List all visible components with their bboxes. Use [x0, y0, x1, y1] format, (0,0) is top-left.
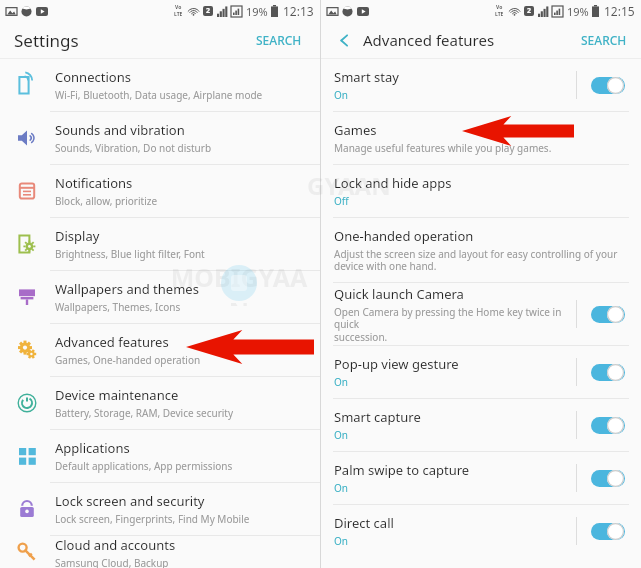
staticText: Device maintenance	[55, 386, 179, 404]
button[interactable]: Toggle Pop-up view gesture	[591, 364, 625, 381]
staticText: LTE	[495, 11, 504, 18]
staticText: Notifications	[55, 174, 133, 192]
staticText: Brightness, Blue light filter, Font	[55, 247, 205, 261]
button[interactable]: Toggle Palm swipe to capture	[591, 470, 625, 487]
button[interactable]: Pop-up view gesture	[321, 346, 641, 398]
staticText: Samsung Cloud, Backup	[55, 556, 169, 568]
button[interactable]: Cloud and accounts	[0, 536, 320, 568]
staticText: SEARCH	[581, 32, 627, 48]
staticText: Pop-up view gesture	[334, 355, 459, 373]
staticText: Games, One-handed operation	[55, 353, 201, 367]
button[interactable]: Back	[331, 27, 357, 53]
staticText: Settings	[14, 29, 79, 52]
staticText: Sounds and vibration	[55, 121, 185, 139]
button[interactable]: Games	[321, 112, 641, 164]
button[interactable]: Advanced features	[0, 324, 320, 376]
staticText: 2	[206, 6, 211, 16]
button[interactable]: Palm swipe to capture	[321, 452, 641, 504]
staticText: 19%	[567, 4, 589, 19]
staticText: 12:15	[604, 3, 635, 19]
staticText: Wi-Fi, Bluetooth, Data usage, Airplane m…	[55, 88, 263, 102]
staticText: Open Camera by pressing the Home key twi…	[334, 305, 576, 344]
button[interactable]: Toggle Smart capture	[591, 417, 625, 434]
button[interactable]: Toggle Quick launch Camera	[591, 306, 625, 323]
staticText: 19%	[246, 4, 268, 19]
staticText: Block, allow, prioritize	[55, 194, 158, 208]
staticText: Connections	[55, 68, 131, 86]
button[interactable]: SEARCH	[577, 28, 631, 52]
staticText: Palm swipe to capture	[334, 461, 470, 479]
button[interactable]: Smart stay	[321, 59, 641, 111]
staticText: Adjust the screen size and layout for ea…	[334, 247, 618, 273]
staticText: Vo	[496, 4, 503, 11]
staticText: On	[334, 375, 348, 389]
button[interactable]: One-handed operation	[321, 218, 641, 282]
button[interactable]: Wallpapers and themes	[0, 271, 320, 323]
staticText: GYAAN	[307, 169, 391, 199]
button[interactable]: Toggle Direct call	[591, 523, 625, 540]
staticText: Lock and hide apps	[334, 174, 452, 192]
staticText: On	[334, 428, 348, 442]
staticText: 2	[527, 6, 532, 16]
button[interactable]: SEARCH	[252, 28, 306, 52]
button[interactable]: Connections	[0, 59, 320, 111]
staticText: Lock screen, Fingerprints, Find My Mobil…	[55, 512, 250, 526]
button[interactable]: Smart capture	[321, 399, 641, 451]
button[interactable]: Applications	[0, 430, 320, 482]
staticText: Direct call	[334, 514, 394, 532]
staticText: Off	[334, 194, 349, 208]
staticText: Smart capture	[334, 408, 421, 426]
staticText: Quick launch Camera	[334, 285, 464, 303]
button[interactable]: Notifications	[0, 165, 320, 217]
button[interactable]: Direct call	[321, 505, 641, 557]
staticText: Wallpapers, Themes, Icons	[55, 300, 181, 314]
staticText: Sounds, Vibration, Do not disturb	[55, 141, 212, 155]
button[interactable]: Toggle Smart stay	[591, 77, 625, 94]
staticText: Advanced features	[55, 333, 169, 351]
staticText: Applications	[55, 439, 130, 457]
staticText: LTE	[174, 11, 183, 18]
staticText: Vo	[175, 4, 182, 11]
staticText: Default applications, App permissions	[55, 459, 233, 473]
button[interactable]: Lock screen and security	[0, 483, 320, 535]
button[interactable]: Device maintenance	[0, 377, 320, 429]
staticText: Wallpapers and themes	[55, 280, 199, 298]
staticText: Smart stay	[334, 68, 399, 86]
staticText: Games	[334, 121, 377, 139]
button[interactable]: Quick launch Camera	[321, 283, 641, 345]
staticText: MOBIGYAAN	[164, 260, 314, 306]
staticText: On	[334, 534, 348, 548]
staticText: Display	[55, 227, 100, 245]
staticText: One-handed operation	[334, 227, 474, 245]
staticText: On	[334, 88, 348, 102]
staticText: 12:13	[283, 3, 314, 19]
button[interactable]: Lock and hide apps	[321, 165, 641, 217]
staticText: Manage useful features while you play ga…	[334, 141, 552, 155]
button[interactable]: Sounds and vibration	[0, 112, 320, 164]
staticText: Cloud and accounts	[55, 536, 176, 554]
staticText: SEARCH	[256, 32, 302, 48]
staticText: Advanced features	[363, 30, 495, 50]
button[interactable]: Display	[0, 218, 320, 270]
staticText: Battery, Storage, RAM, Device security	[55, 406, 234, 420]
staticText: On	[334, 481, 348, 495]
staticText: Lock screen and security	[55, 492, 205, 510]
